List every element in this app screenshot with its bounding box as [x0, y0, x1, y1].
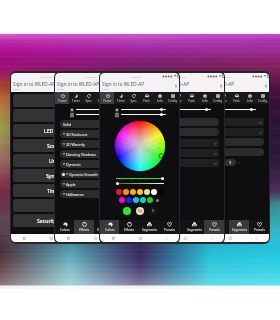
button[interactable]: Colors	[55, 220, 74, 234]
button[interactable]: * Dynamic	[60, 160, 129, 168]
button[interactable]: Create playlist	[150, 128, 219, 136]
button[interactable]: Segment 1	[195, 128, 264, 136]
button[interactable]: Info	[198, 92, 211, 104]
button[interactable]: * 2D Waverly	[60, 140, 129, 148]
button[interactable]: Segments	[229, 220, 249, 234]
button[interactable]: System navigation	[55, 234, 82, 242]
button[interactable]: Peek	[230, 92, 243, 104]
button[interactable]: Sync Interfaces	[13, 169, 88, 182]
button[interactable]: Segments	[184, 220, 204, 234]
button[interactable]: System navigation	[108, 234, 134, 242]
button[interactable]: Colors	[190, 220, 209, 234]
button[interactable]: Peek	[95, 92, 108, 104]
button[interactable]: Info	[108, 92, 121, 104]
button[interactable]: System navigation	[198, 234, 224, 242]
button[interactable]: 00:01:34 -	[150, 159, 219, 167]
button[interactable]: System navigation	[190, 234, 217, 242]
button[interactable]: Colour swatch	[123, 189, 129, 195]
button[interactable]: User Interface	[13, 154, 88, 167]
button[interactable]: Back	[13, 94, 88, 107]
button[interactable]: Colour swatch	[116, 189, 122, 195]
button[interactable]: Colour slot 2	[136, 207, 144, 215]
button[interactable]: Solid	[60, 120, 129, 128]
button[interactable]: Sync	[127, 92, 140, 104]
button[interactable]: Sound Settings	[13, 139, 88, 152]
button[interactable]: Colour swatch	[126, 197, 132, 203]
button[interactable]: System navigation	[11, 234, 38, 242]
button[interactable]: Effects	[74, 220, 94, 234]
button[interactable]: Sync	[217, 92, 230, 104]
button[interactable]: Config	[121, 92, 134, 104]
button[interactable]: Sync	[82, 92, 95, 104]
button[interactable]: Presets	[159, 220, 179, 234]
button[interactable]: System navigation	[100, 234, 127, 242]
button[interactable]: Presets	[249, 220, 269, 234]
button[interactable]: Colour swatch	[133, 197, 139, 203]
button[interactable]: Create preset	[150, 118, 219, 126]
button[interactable]: Config	[256, 92, 269, 104]
button[interactable]: Timer	[159, 92, 172, 104]
button[interactable]: Peek	[140, 92, 153, 104]
button[interactable]: System navigation	[127, 234, 153, 242]
button[interactable]: Colour swatch	[140, 197, 146, 203]
button[interactable]: Timer	[69, 92, 82, 104]
button[interactable]: Timer	[114, 92, 127, 104]
button[interactable]: More options	[84, 79, 90, 92]
button[interactable]: Effects	[164, 220, 184, 234]
button[interactable]: LED Preferences	[13, 124, 88, 137]
button[interactable]: Colour swatch	[147, 197, 153, 203]
button[interactable]: Config	[211, 92, 224, 104]
button[interactable]: Reset segments	[195, 148, 264, 156]
button[interactable]: System navigation	[82, 234, 108, 242]
button[interactable]: More options	[128, 79, 134, 92]
button[interactable]: System navigation	[145, 234, 172, 242]
button[interactable]: Presets	[204, 220, 224, 234]
button[interactable]: Power	[100, 92, 114, 104]
button[interactable]: System navigation	[64, 234, 90, 242]
button[interactable]: Colour swatch	[151, 189, 157, 195]
button[interactable]: System navigation	[243, 234, 269, 242]
button[interactable]: Power	[190, 92, 204, 104]
button[interactable]: Power	[145, 92, 159, 104]
button[interactable]: Colour slot 1	[123, 207, 131, 215]
button[interactable]: Colour swatch	[130, 189, 136, 195]
button[interactable]: Segments	[94, 220, 114, 234]
button[interactable]: Presets	[114, 220, 134, 234]
button[interactable]: More options	[173, 79, 179, 92]
button[interactable]: * Halloween	[60, 190, 129, 198]
button[interactable]: Colour swatch	[119, 197, 125, 203]
button[interactable]: System navigation	[172, 234, 198, 242]
button[interactable]: Power	[55, 92, 69, 104]
button[interactable]: Effects	[209, 220, 229, 234]
button[interactable]: System navigation	[38, 234, 64, 242]
button[interactable]: More options	[218, 79, 224, 92]
button[interactable]: * 3D Starburst	[60, 130, 129, 138]
button[interactable]: * Dynamic Smooth	[60, 170, 129, 178]
button[interactable]: Peek	[185, 92, 198, 104]
button[interactable]: Usermods	[13, 199, 88, 212]
button[interactable]: More colours	[156, 199, 159, 202]
button[interactable]: Colour slot 3	[149, 207, 157, 215]
button[interactable]: Segments	[139, 220, 159, 234]
button[interactable]: Timer	[204, 92, 217, 104]
button[interactable]: Colors	[100, 220, 119, 234]
button[interactable]: Colour swatch	[137, 189, 143, 195]
button[interactable]: Colour swatch	[144, 189, 150, 195]
button[interactable]: 3 Inactive	[150, 149, 219, 157]
button[interactable]: Security & Updates	[13, 214, 88, 227]
button[interactable]: System navigation	[217, 234, 243, 242]
button[interactable]: Effects	[119, 220, 139, 234]
button[interactable]: More options	[263, 79, 269, 92]
button[interactable]: Add segment	[195, 138, 264, 146]
button[interactable]: * Apple	[60, 180, 129, 188]
button[interactable]: Info	[153, 92, 166, 104]
button[interactable]: Segment 0	[195, 118, 264, 126]
button[interactable]: WiFi Setup	[13, 109, 88, 122]
button[interactable]: Config	[166, 92, 179, 104]
button[interactable]: System navigation	[153, 234, 179, 242]
button[interactable]: * Dancing Shadows	[60, 150, 129, 158]
button[interactable]: Colors	[145, 220, 164, 234]
button[interactable]: Sync	[172, 92, 185, 104]
button[interactable]: 1	[224, 159, 236, 166]
